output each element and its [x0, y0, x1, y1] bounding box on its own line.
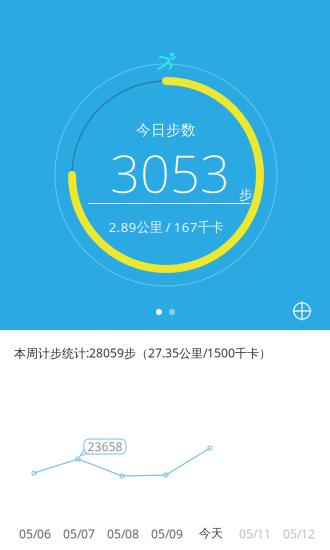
staticText: 05/08 — [107, 526, 139, 542]
staticText: 今天 — [199, 526, 223, 541]
staticText: 05/12 — [283, 526, 315, 542]
staticText: 05/11 — [239, 526, 271, 542]
button[interactable]: Locate — [285, 294, 319, 328]
staticText: 3053 — [110, 138, 230, 207]
staticText: 步 — [239, 187, 252, 203]
staticText: 05/06 — [19, 526, 51, 542]
staticText: 2.89公里 / 167千卡 — [108, 218, 223, 236]
staticText: 23658 — [87, 438, 122, 454]
staticText: 05/09 — [151, 526, 183, 542]
staticText: 05/07 — [63, 526, 95, 542]
staticText: 今日步数 — [136, 121, 196, 139]
staticText: 本周计步统计:28059步（27.35公里/1500千卡） — [14, 345, 271, 361]
